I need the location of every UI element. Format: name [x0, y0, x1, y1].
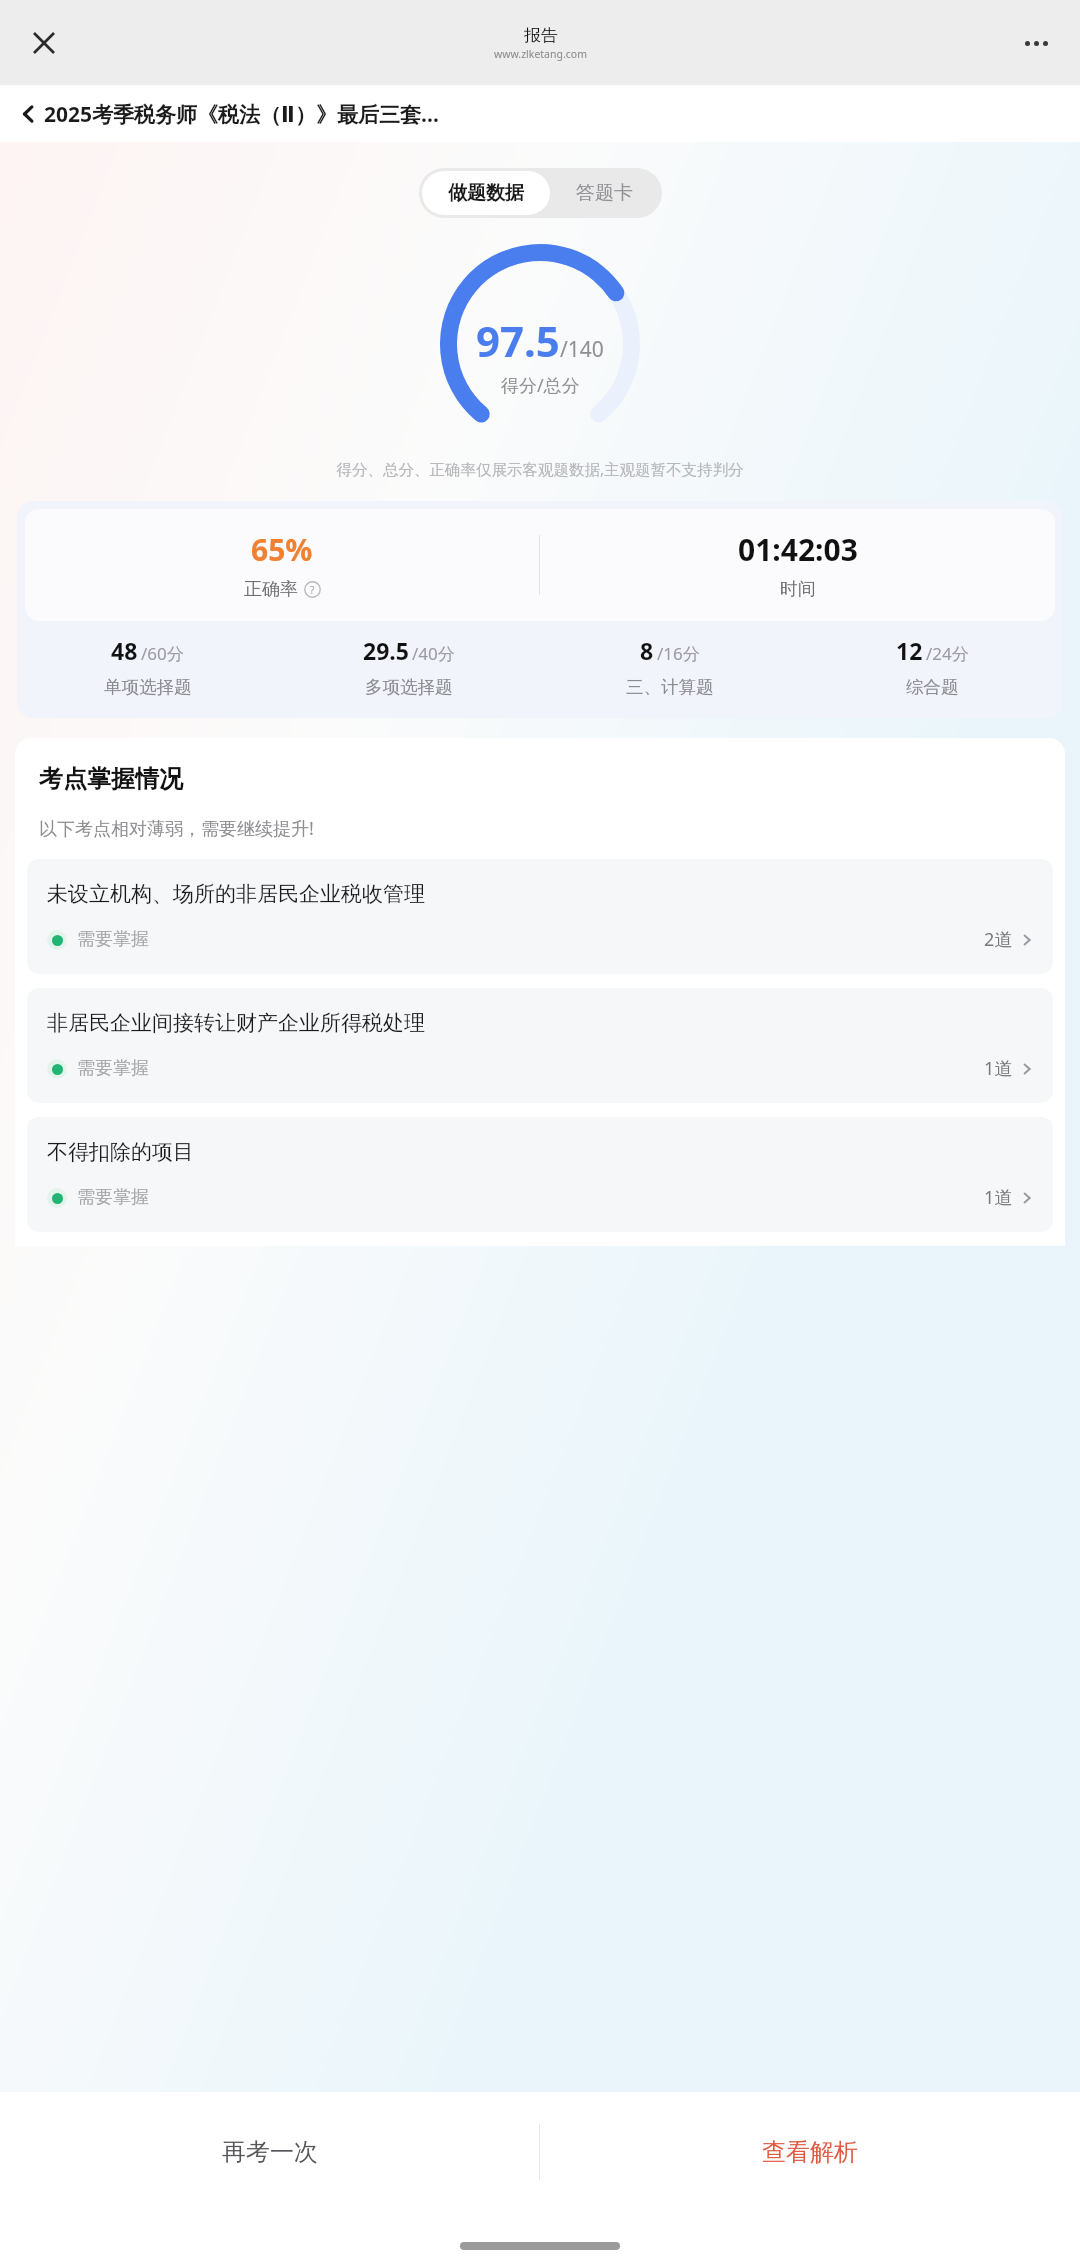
button[interactable]: More options	[1008, 15, 1064, 71]
staticText: 2道	[984, 927, 1013, 952]
staticText: 综合题	[906, 676, 959, 698]
staticText: 2025考季税务师《税法（Ⅱ）》最后三套…	[44, 100, 439, 129]
staticText: /16分	[657, 642, 700, 665]
staticText: 需要掌握	[77, 928, 149, 951]
staticText: 得分、总分、正确率仅展示客观题数据,主观题暂不支持判分	[0, 458, 1080, 479]
staticText: 48	[111, 635, 138, 666]
staticText: 需要掌握	[77, 1057, 149, 1080]
staticText: 8	[640, 635, 654, 666]
button[interactable]: 再考一次	[0, 2092, 539, 2212]
staticText: 做题数据	[448, 181, 524, 205]
staticText: 1道	[984, 1185, 1013, 1210]
staticText: /24分	[926, 642, 969, 665]
button[interactable]: 不得扣除的项目	[27, 1117, 1053, 1232]
staticText: 12	[896, 635, 923, 666]
staticText: 不得扣除的项目	[47, 1139, 194, 1165]
button[interactable]: 非居民企业间接转让财产企业所得税处理	[27, 988, 1053, 1103]
button[interactable]: Accuracy info	[304, 581, 321, 598]
staticText: 再考一次	[222, 2137, 318, 2167]
staticText: 答题卡	[576, 181, 633, 205]
staticText: ?	[310, 583, 315, 597]
staticText: 97.5	[476, 312, 560, 369]
staticText: www.zlketang.com	[494, 47, 587, 61]
staticText: 单项选择题	[104, 676, 192, 698]
staticText: /140	[560, 335, 604, 364]
staticText: 以下考点相对薄弱，需要继续提升!	[39, 816, 314, 841]
staticText: 未设立机构、场所的非居民企业税收管理	[47, 881, 425, 907]
button[interactable]: Back	[14, 99, 44, 129]
staticText: 报告	[524, 25, 558, 46]
staticText: 考点掌握情况	[39, 764, 183, 794]
staticText: 时间	[780, 578, 816, 601]
staticText: 正确率	[244, 578, 298, 601]
button[interactable]: Close	[16, 15, 72, 71]
button[interactable]: 答题卡	[550, 171, 659, 215]
staticText: 三、计算题	[626, 676, 714, 698]
staticText: 多项选择题	[365, 676, 453, 698]
staticText: 29.5	[363, 635, 409, 666]
staticText: 需要掌握	[77, 1186, 149, 1209]
staticText: 非居民企业间接转让财产企业所得税处理	[47, 1010, 425, 1036]
staticText: 1道	[984, 1056, 1013, 1081]
button[interactable]: 查看解析	[540, 2092, 1080, 2212]
staticText: 查看解析	[762, 2137, 858, 2167]
staticText: 得分/总分	[501, 373, 580, 398]
button[interactable]: 未设立机构、场所的非居民企业税收管理	[27, 859, 1053, 974]
staticText: 01:42:03	[738, 529, 858, 570]
button[interactable]: 做题数据	[422, 171, 550, 215]
staticText: /40分	[412, 642, 455, 665]
staticText: /60分	[141, 642, 184, 665]
staticText: 65%	[251, 529, 313, 570]
